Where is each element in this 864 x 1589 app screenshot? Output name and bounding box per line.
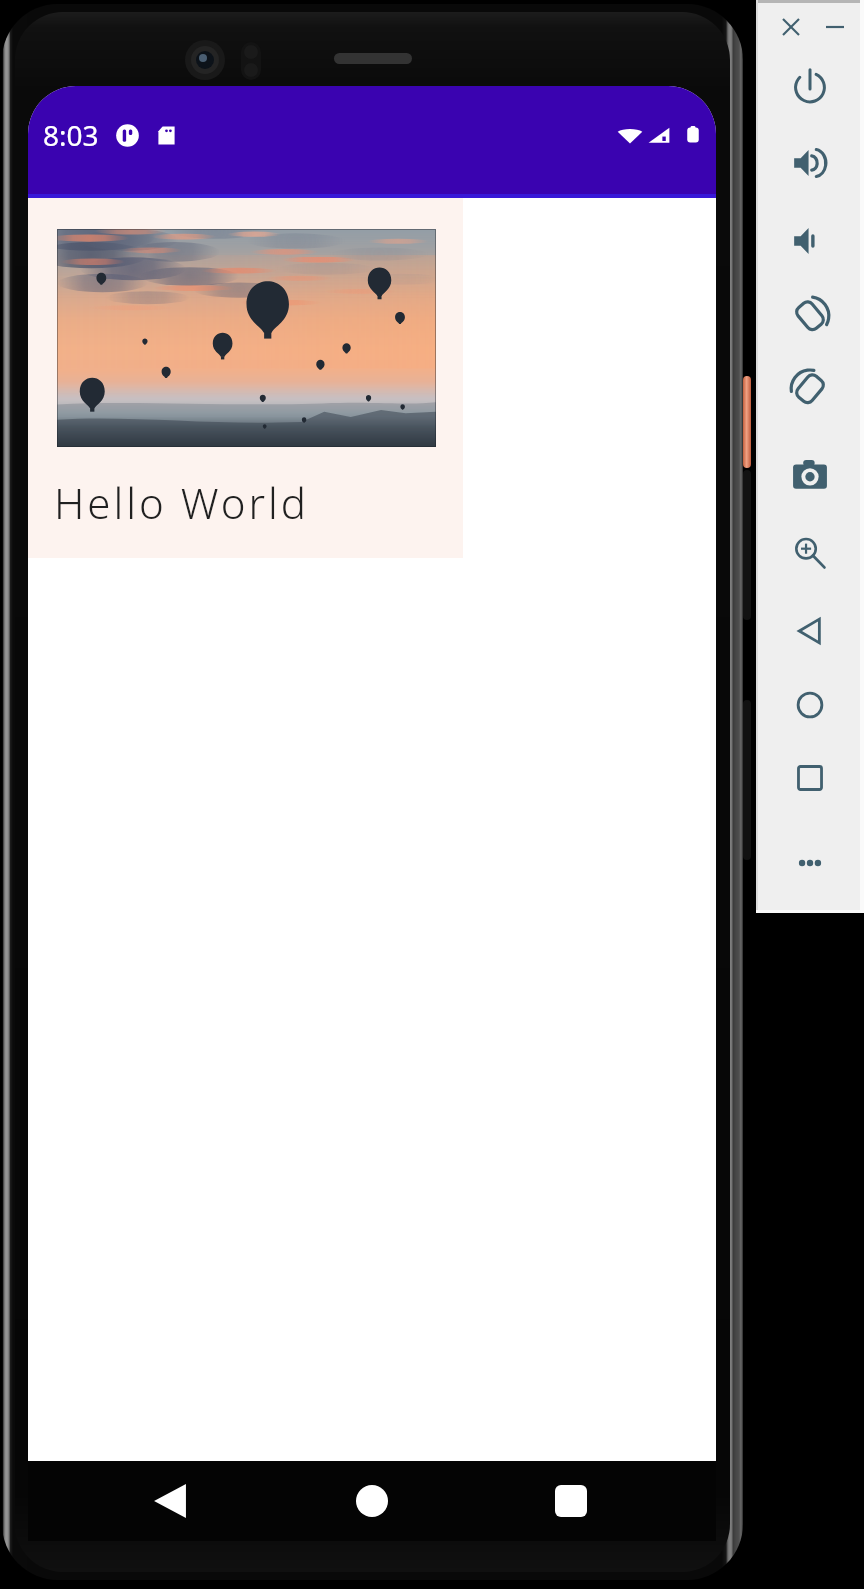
button[interactable]: Close: [774, 10, 808, 44]
button[interactable]: Volume down: [784, 215, 836, 267]
button[interactable]: Back: [130, 1461, 210, 1541]
button[interactable]: Back: [784, 605, 836, 657]
staticText: Hello World: [54, 474, 309, 531]
button[interactable]: Rotate left: [784, 289, 836, 341]
button[interactable]: More: [784, 837, 836, 889]
button[interactable]: Rotate right: [784, 362, 836, 414]
button[interactable]: Home: [784, 679, 836, 731]
button[interactable]: Hello World card: [28, 198, 463, 558]
button[interactable]: Overview: [784, 752, 836, 804]
button[interactable]: Take screenshot: [784, 449, 836, 501]
button[interactable]: Power: [784, 60, 836, 112]
button[interactable]: Recent apps: [531, 1461, 611, 1541]
staticText: 8:03: [43, 116, 99, 154]
button[interactable]: Home: [332, 1461, 412, 1541]
button[interactable]: Minimize: [818, 10, 852, 44]
button[interactable]: Volume up: [784, 137, 836, 189]
button[interactable]: Zoom: [784, 527, 836, 579]
